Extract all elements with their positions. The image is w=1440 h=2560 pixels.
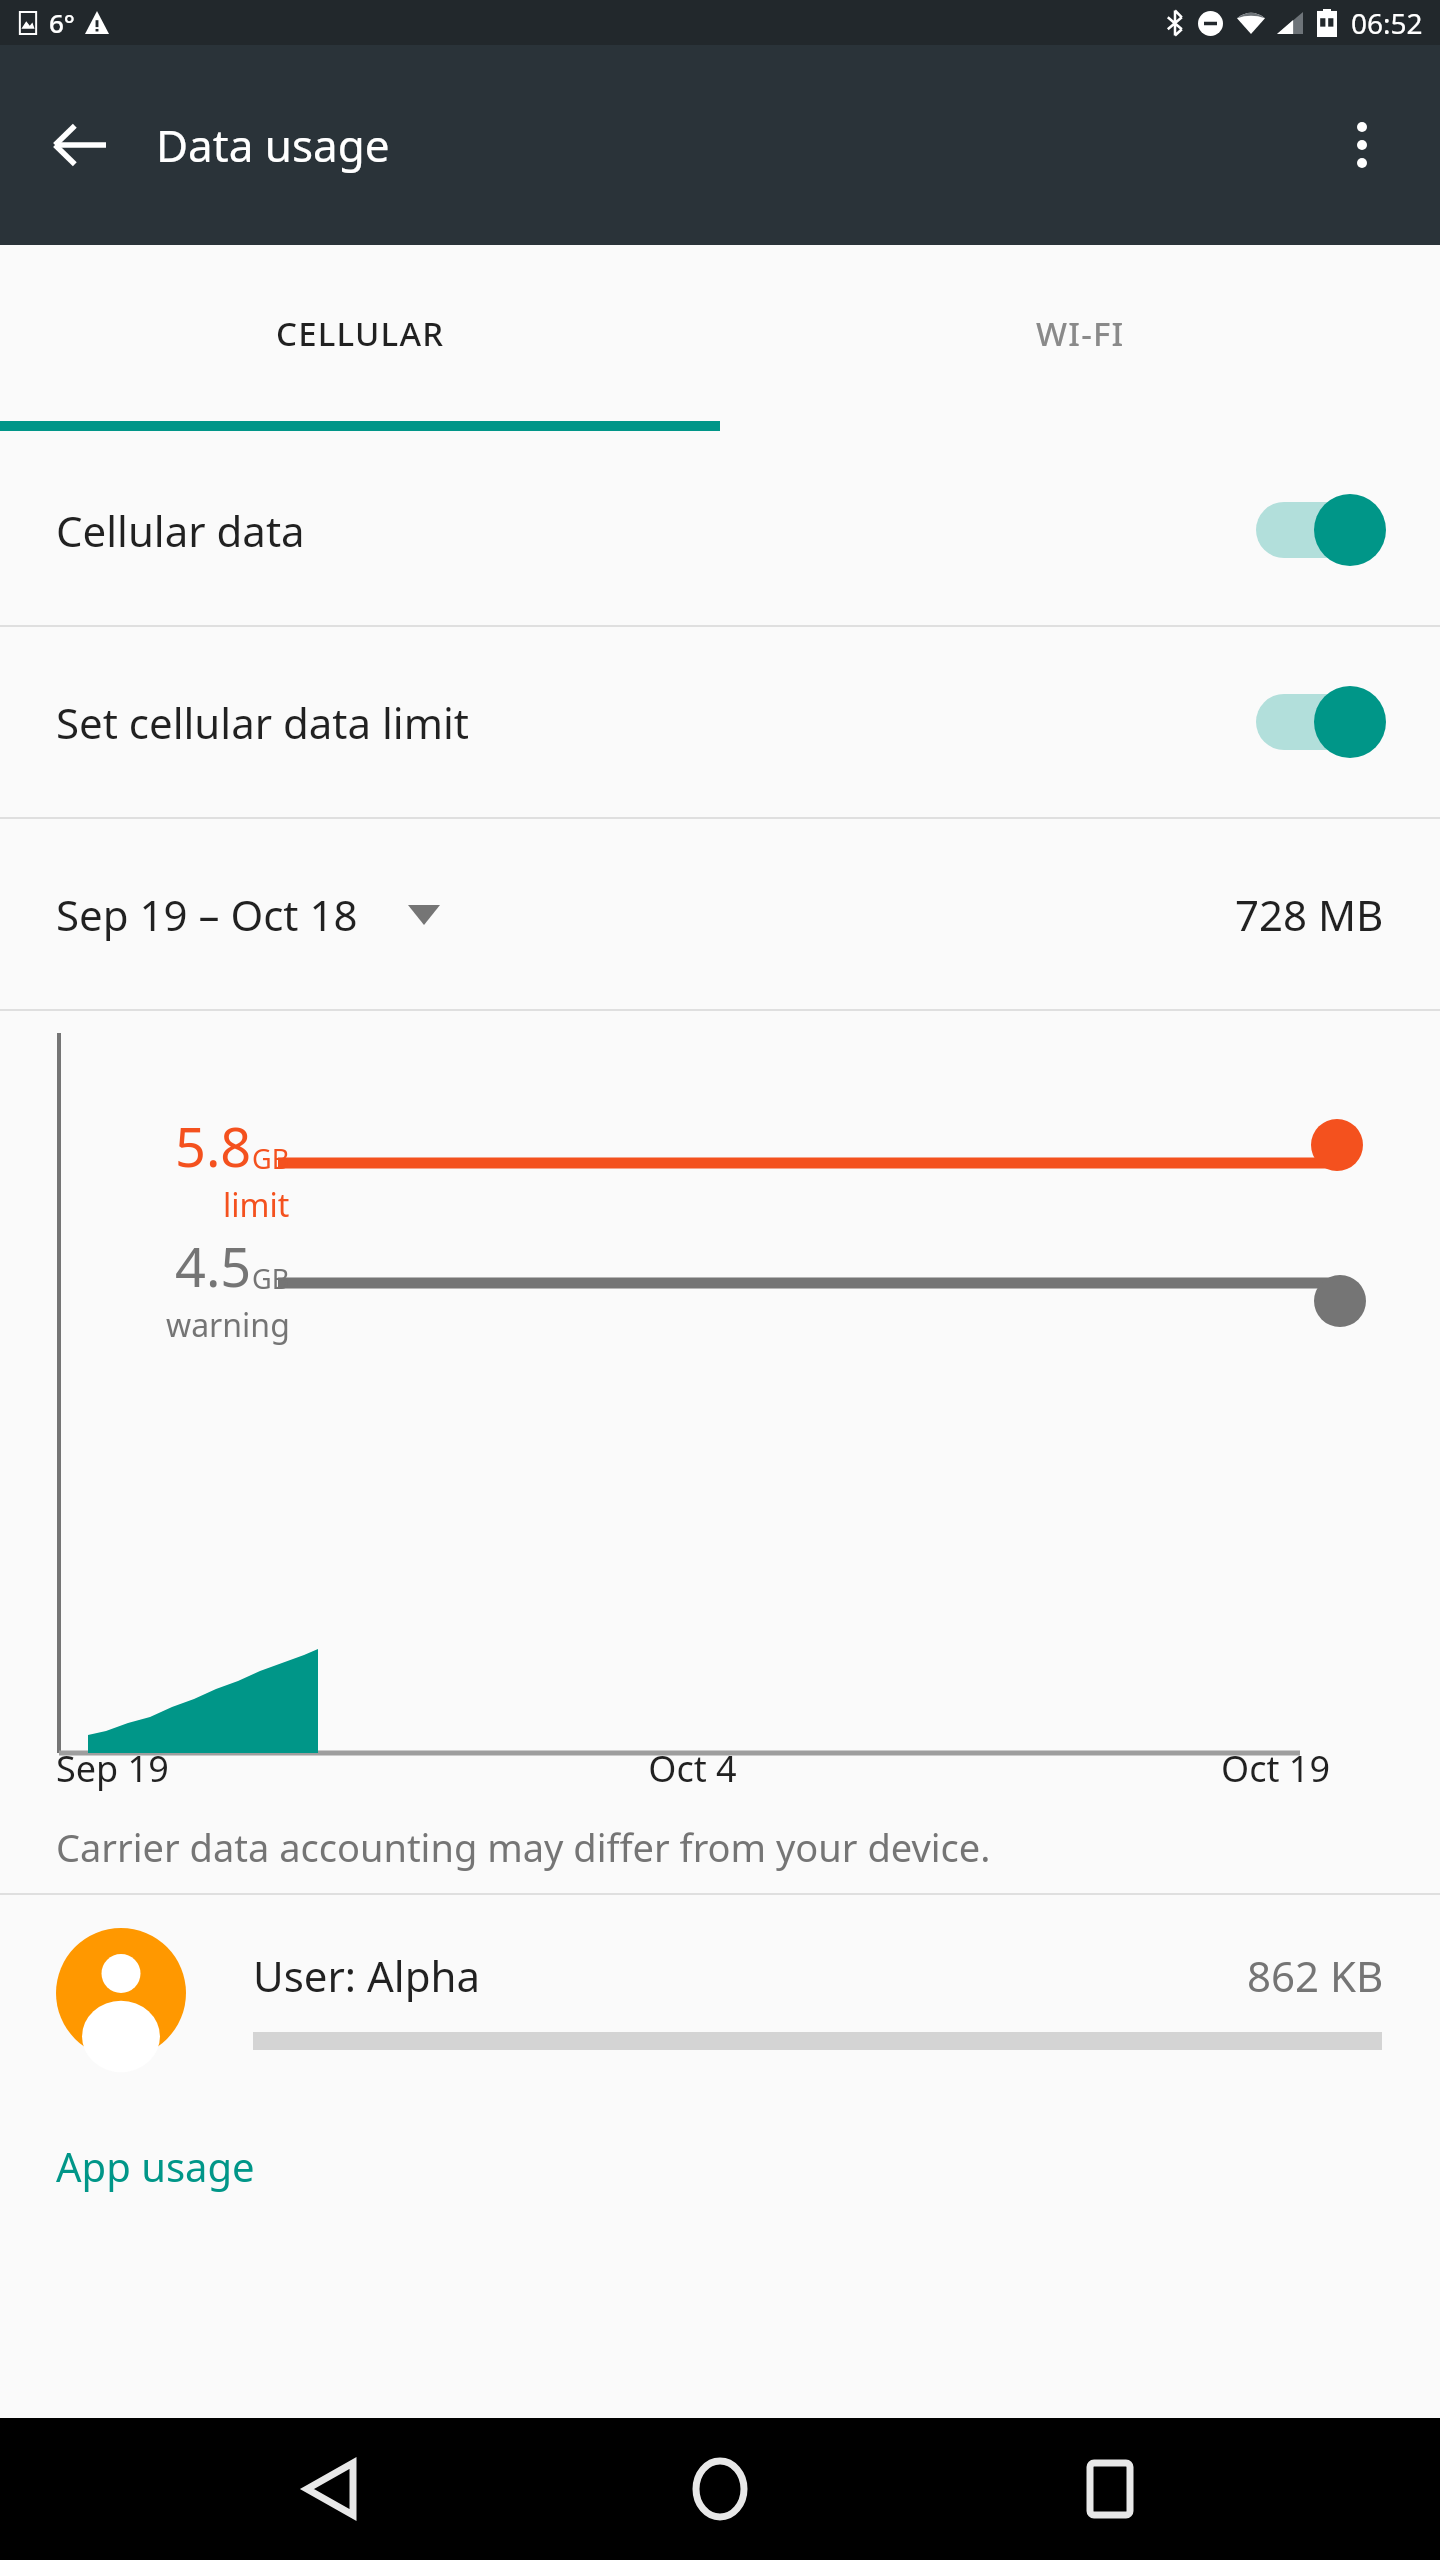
button[interactable]: Set cellular data limit bbox=[0, 627, 1440, 817]
button[interactable]: CELLULAR bbox=[0, 245, 720, 421]
button[interactable]: Back bbox=[270, 2429, 390, 2549]
button[interactable]: More options bbox=[1320, 103, 1404, 187]
staticText: Cellular data bbox=[56, 502, 305, 559]
staticText: GB bbox=[252, 1260, 290, 1297]
staticText: warning bbox=[166, 1303, 290, 1347]
staticText: WI-FI bbox=[1036, 311, 1125, 356]
staticText: 728 MB bbox=[1235, 886, 1384, 943]
staticText: Oct 19 bbox=[905, 1744, 1330, 1793]
staticText: Carrier data accounting may differ from … bbox=[56, 1821, 991, 1873]
staticText: CELLULAR bbox=[276, 311, 445, 356]
button[interactable]: WI-FI bbox=[720, 245, 1440, 421]
button[interactable]: Cellular data bbox=[0, 435, 1440, 625]
staticText: 06:52 bbox=[1351, 4, 1423, 42]
button[interactable]: Sep 19 – Oct 18 bbox=[0, 819, 1440, 1009]
staticText: Sep 19 – Oct 18 bbox=[56, 886, 358, 943]
button[interactable]: Back bbox=[38, 103, 122, 187]
staticText: limit bbox=[223, 1183, 290, 1227]
staticText: Set cellular data limit bbox=[56, 694, 469, 751]
staticText: Data usage bbox=[156, 115, 390, 175]
staticText: Sep 19 bbox=[56, 1744, 480, 1793]
staticText: User: Alpha bbox=[253, 1947, 481, 2004]
staticText: GB bbox=[252, 1140, 290, 1177]
staticText: App usage bbox=[56, 2139, 255, 2193]
staticText: Oct 4 bbox=[480, 1744, 905, 1793]
button[interactable]: Home bbox=[660, 2429, 780, 2549]
button[interactable]: User: Alpha bbox=[0, 1895, 1440, 2091]
staticText: 4.5 bbox=[175, 1229, 252, 1303]
staticText: 862 KB bbox=[1247, 1947, 1384, 2004]
staticText: 6° bbox=[49, 5, 75, 40]
button[interactable]: App usage bbox=[56, 2139, 255, 2193]
button[interactable]: Recent apps bbox=[1050, 2429, 1170, 2549]
staticText: 5.8 bbox=[175, 1109, 252, 1183]
